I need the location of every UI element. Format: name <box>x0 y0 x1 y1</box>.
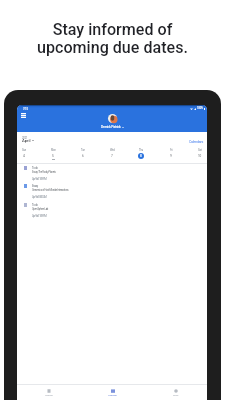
button[interactable]: Calendars <box>189 140 204 144</box>
staticText: April <box>22 138 31 143</box>
button[interactable]: Mon <box>46 149 60 166</box>
staticText: 10 <box>198 154 202 158</box>
button[interactable]: More <box>144 385 207 400</box>
staticText: 5 <box>52 154 54 158</box>
staticText: 7:15 <box>23 107 28 110</box>
button[interactable]: Wed <box>105 149 119 166</box>
staticText: Stay informed of <box>0 20 225 39</box>
button[interactable]: 2021 <box>21 135 53 147</box>
staticText: To do <box>32 166 38 169</box>
staticText: Fri <box>170 149 173 152</box>
button[interactable]: Open navigation menu <box>19 111 28 120</box>
button[interactable]: Calendar <box>81 385 144 400</box>
staticText: 4 <box>23 154 25 158</box>
staticText: 7 <box>111 154 113 158</box>
staticText: Open Sphere Lab <box>32 208 49 211</box>
staticText: 8 <box>140 154 142 158</box>
button[interactable]: Derrick Patrick <box>17 114 207 129</box>
staticText: Essay: The Rocky Planets <box>32 171 56 174</box>
staticText: 100% <box>197 107 203 110</box>
staticText: Tue <box>81 149 85 152</box>
button[interactable]: Sat <box>193 149 207 166</box>
button[interactable]: Essay <box>17 183 207 201</box>
button[interactable]: To do <box>17 202 207 220</box>
button[interactable]: Thu <box>134 149 148 166</box>
button[interactable]: To do <box>17 165 207 183</box>
staticText: Apr 9 at 11:59 PM <box>32 214 47 217</box>
button[interactable]: Fri <box>164 149 178 166</box>
staticText: More <box>173 394 179 397</box>
staticText: Sun <box>22 149 26 152</box>
staticText: upcoming due dates. <box>0 38 225 57</box>
staticText: Thu <box>139 149 143 152</box>
staticText: Mon <box>51 149 56 152</box>
staticText: Apr 9 at 11:59 PM <box>32 177 47 180</box>
staticText: Essay <box>32 184 38 187</box>
staticText: To do <box>32 203 38 206</box>
staticText: Wed <box>110 149 115 152</box>
staticText: Classes <box>45 394 53 397</box>
staticText: 2021 <box>22 136 28 139</box>
staticText: Sat <box>198 149 202 152</box>
staticText: Genomics of Host-Microbe Interactions <box>32 189 69 192</box>
staticText: Apr 9 at 10:00 AM <box>32 195 47 198</box>
staticText: Derrick Patrick <box>101 125 121 129</box>
staticText: Calendar <box>108 394 117 397</box>
staticText: 9 <box>170 154 172 158</box>
button[interactable]: Classes <box>17 385 81 400</box>
button[interactable]: Sun <box>17 149 31 166</box>
staticText: 6 <box>82 154 84 158</box>
button[interactable]: Tue <box>76 149 90 166</box>
